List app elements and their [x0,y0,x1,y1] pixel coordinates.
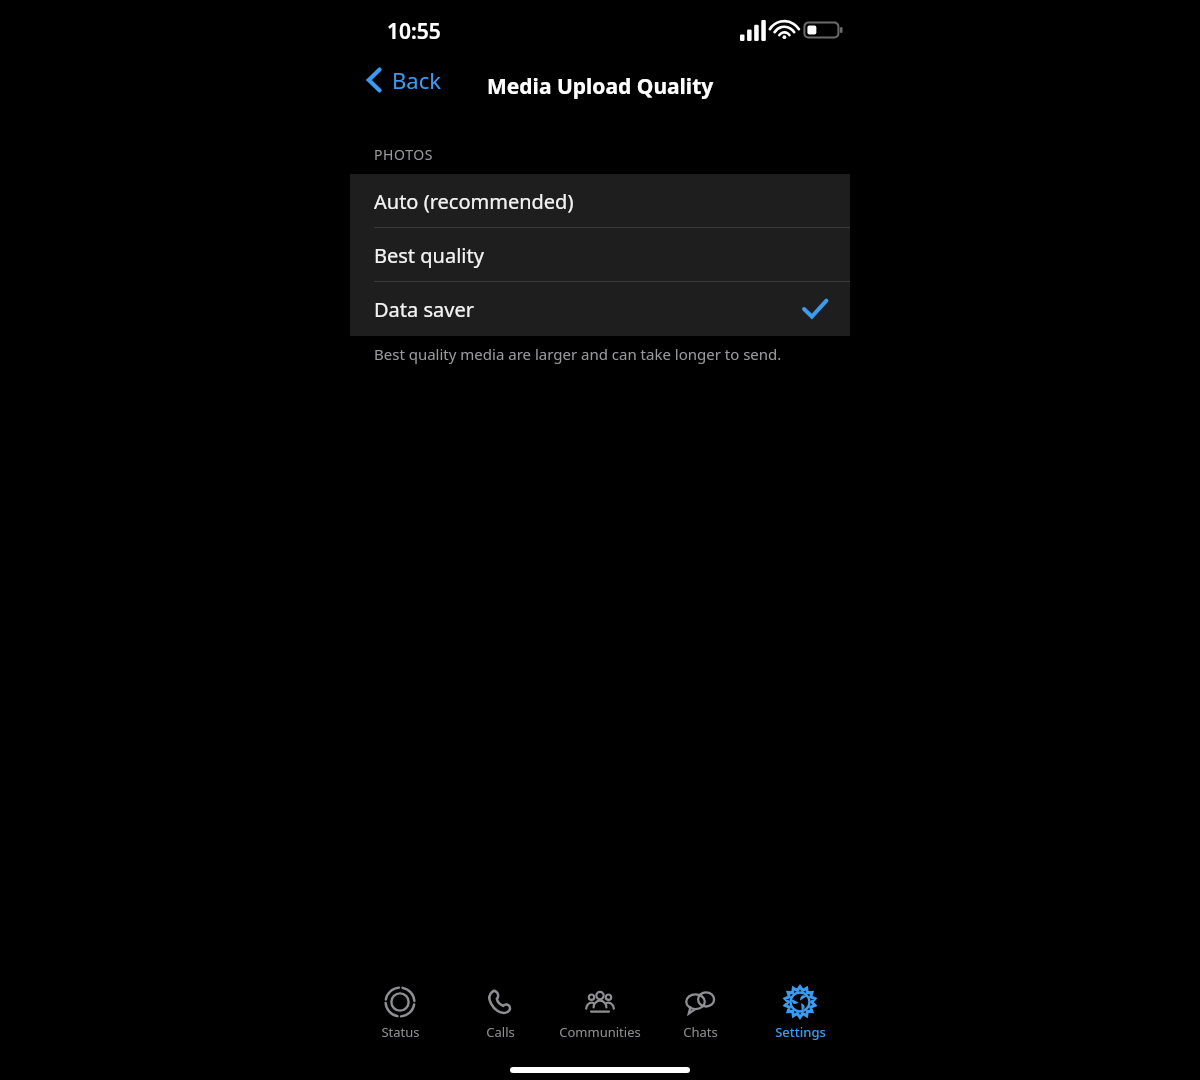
staticText: Auto (recommended) [374,188,574,215]
button[interactable]: Chats [650,982,750,1045]
button[interactable]: Auto (recommended) [350,174,850,228]
button[interactable]: Best quality [350,228,850,282]
staticText: Communities [559,1023,641,1041]
staticText: PHOTOS [374,145,434,164]
staticText: 10:55 [387,17,441,46]
button[interactable]: Calls [450,982,550,1045]
button[interactable]: Back [360,61,447,99]
button[interactable]: Status [350,982,450,1045]
staticText: Back [392,65,441,95]
staticText: Settings [775,1023,826,1041]
button[interactable]: Data saver [350,282,850,336]
button[interactable]: Settings [750,982,850,1045]
staticText: Best quality [374,242,484,269]
staticText: Chats [683,1023,718,1041]
staticText: Status [381,1023,420,1041]
staticText: Media Upload Quality [487,72,714,101]
button[interactable]: Communities [550,982,650,1045]
staticText: Calls [486,1023,515,1041]
staticText: Data saver [374,296,474,323]
staticText: Best quality media are larger and can ta… [374,344,782,364]
